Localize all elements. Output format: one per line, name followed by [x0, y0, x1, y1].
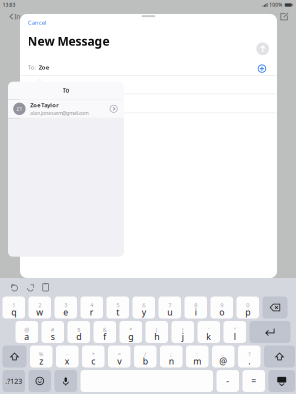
- staticText: l: [234, 331, 236, 342]
- button[interactable]: Paste: [38, 281, 53, 293]
- staticText: .: [248, 355, 250, 367]
- staticText: w: [36, 306, 43, 318]
- staticText: n: [169, 355, 174, 367]
- button[interactable]: 5: [106, 296, 129, 318]
- staticText: 7: [168, 301, 171, 309]
- button[interactable]: Return: [249, 321, 290, 343]
- button[interactable]: $: [67, 321, 90, 343]
- button[interactable]: Add recipient: [258, 65, 266, 72]
- button[interactable]: Send: [256, 42, 269, 55]
- staticText: x: [65, 355, 70, 367]
- staticText: *: [129, 326, 132, 333]
- button[interactable]: =: [108, 345, 130, 367]
- staticText: g: [128, 331, 133, 342]
- button[interactable]: &: [93, 321, 116, 343]
- button[interactable]: %: [30, 345, 52, 367]
- staticText: -: [226, 375, 229, 387]
- button[interactable]: :: [186, 345, 208, 367]
- staticText: Zoe: [39, 63, 50, 71]
- staticText: Zoe Taylor: [30, 101, 58, 109]
- button[interactable]: 3: [54, 296, 77, 318]
- button[interactable]: Undo: [6, 281, 22, 293]
- staticText: 2: [38, 301, 41, 309]
- staticText: j: [182, 331, 184, 342]
- staticText: +: [92, 350, 95, 358]
- button[interactable]: =: [242, 370, 265, 392]
- button[interactable]: New message: [278, 10, 291, 23]
- button[interactable]: Delete: [262, 296, 287, 318]
- staticText: ,: [222, 350, 224, 358]
- button[interactable]: @: [15, 321, 38, 343]
- staticText: ": [234, 326, 236, 333]
- button[interactable]: ": [223, 321, 246, 343]
- button[interactable]: -: [56, 345, 78, 367]
- staticText: b: [143, 355, 148, 367]
- staticText: ?: [248, 350, 250, 358]
- staticText: p: [245, 306, 250, 318]
- staticText: .?123: [5, 376, 22, 386]
- staticText: /: [144, 350, 146, 358]
- staticText: e: [63, 306, 68, 318]
- staticText: 13:03: [3, 2, 16, 8]
- staticText: $: [77, 326, 80, 333]
- button[interactable]: Redo: [22, 281, 38, 293]
- staticText: u: [167, 306, 172, 318]
- button[interactable]: *: [119, 321, 142, 343]
- button[interactable]: ): [171, 321, 194, 343]
- staticText: (: [156, 326, 158, 333]
- button[interactable]: .?123: [2, 370, 25, 392]
- button[interactable]: 8: [184, 296, 207, 318]
- button[interactable]: 7: [158, 296, 181, 318]
- button[interactable]: Dictation: [54, 370, 77, 392]
- staticText: %: [39, 350, 44, 358]
- staticText: ): [182, 326, 184, 333]
- button[interactable]: ': [197, 321, 220, 343]
- button[interactable]: 4: [80, 296, 103, 318]
- button[interactable]: 6: [132, 296, 155, 318]
- staticText: s: [51, 331, 55, 342]
- staticText: a: [24, 331, 29, 342]
- button[interactable]: ZT: [8, 100, 124, 118]
- button[interactable]: 1: [2, 296, 25, 318]
- staticText: Cancel: [28, 18, 47, 27]
- staticText: @: [24, 326, 29, 333]
- button[interactable]: 2: [28, 296, 51, 318]
- button[interactable]: Hide keyboard: [268, 370, 295, 392]
- button[interactable]: Shift: [2, 345, 26, 367]
- button[interactable]: ?: [238, 345, 260, 367]
- staticText: 4: [90, 301, 93, 309]
- staticText: ZT: [16, 105, 22, 112]
- button[interactable]: ;: [160, 345, 182, 367]
- button[interactable]: #: [41, 321, 64, 343]
- staticText: 5: [116, 301, 119, 309]
- button[interactable]: ,: [212, 345, 234, 367]
- staticText: New Message: [27, 33, 109, 49]
- staticText: To: [62, 86, 69, 95]
- staticText: =: [118, 350, 121, 358]
- button[interactable]: +: [82, 345, 104, 367]
- staticText: In: [14, 12, 20, 21]
- button[interactable]: Back to Inbox: [7, 10, 23, 22]
- staticText: 3: [64, 301, 67, 309]
- button[interactable]: Emoji: [28, 370, 51, 392]
- staticText: i: [195, 306, 197, 318]
- staticText: =: [251, 375, 256, 387]
- staticText: f: [103, 331, 106, 342]
- staticText: &: [103, 326, 107, 333]
- button[interactable]: -: [216, 370, 239, 392]
- staticText: To:: [28, 63, 39, 71]
- button[interactable]: Cancel: [20, 13, 55, 31]
- staticText: y: [142, 306, 146, 318]
- staticText: 6: [142, 301, 145, 309]
- button[interactable]: (: [145, 321, 168, 343]
- button[interactable]: /: [134, 345, 156, 367]
- button[interactable]: 9: [210, 296, 233, 318]
- staticText: 100%: [269, 2, 282, 8]
- staticText: @: [219, 355, 227, 367]
- staticText: #: [51, 326, 55, 333]
- button[interactable]: 0: [236, 296, 259, 318]
- button[interactable]: Shift: [264, 345, 295, 367]
- staticText: 0: [246, 301, 249, 309]
- staticText: r: [90, 306, 94, 318]
